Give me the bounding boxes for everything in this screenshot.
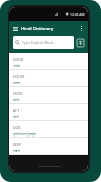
staticText: रखना <box>13 148 20 153</box>
staticText: कुत्ता/श्वान/कुक्कुर <box>13 131 36 136</box>
button[interactable]: GOOD <box>9 53 88 70</box>
staticText: Hindi Dictionary <box>21 26 54 32</box>
staticText: DOG <box>13 125 21 130</box>
button[interactable]: HOUSE <box>9 70 88 87</box>
button[interactable]: Menu <box>11 24 20 33</box>
staticText: 12:33 AM <box>70 12 85 16</box>
staticText: GOOD <box>13 57 24 62</box>
staticText: KEEP <box>13 142 21 147</box>
staticText: HOUSE <box>13 74 25 79</box>
staticText: मकान <box>13 80 21 85</box>
button[interactable]: Keyboard <box>77 36 84 49</box>
button[interactable]: Type English Word... <box>13 36 74 49</box>
staticText: अच्छा <box>13 63 21 68</box>
staticText: खाना <box>13 97 20 102</box>
button[interactable]: DOG <box>9 121 88 138</box>
staticText: Type English Word... <box>22 40 57 45</box>
staticText: कार्य <box>13 114 19 119</box>
button[interactable]: More options <box>77 24 86 33</box>
button[interactable]: FOOD <box>9 87 88 104</box>
staticText: ACT <box>13 108 20 113</box>
staticText: FOOD <box>13 91 23 96</box>
button[interactable]: KEEP <box>9 138 88 155</box>
button[interactable]: ACT <box>9 104 88 121</box>
